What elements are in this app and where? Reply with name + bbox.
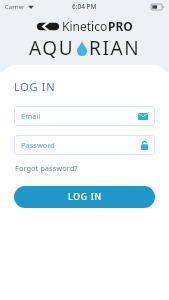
staticText: Carrier [5,3,25,11]
staticText: PRO [108,18,133,34]
staticText: Email [21,111,138,121]
button[interactable]: Forgot password? [14,162,79,174]
staticText: LOG IN [14,79,56,94]
staticText: 6:04 PM [72,2,97,11]
other: Password field [141,141,148,150]
staticText: RIAN [89,35,141,61]
staticText: Password [21,140,141,150]
staticText: Kinetico [62,18,108,34]
staticText: Forgot password? [15,163,78,173]
staticText: LOG IN [68,191,102,203]
button[interactable]: LOG IN [14,186,155,208]
button[interactable]: Email [14,106,155,126]
other: Email field [138,113,148,120]
button[interactable]: Password [14,135,155,155]
staticText: AQU [29,35,75,61]
